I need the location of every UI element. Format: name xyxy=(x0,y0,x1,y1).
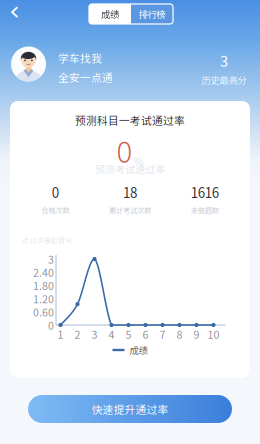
staticText: 累计考试次数 xyxy=(109,205,151,215)
staticText: 预测考试通过率 xyxy=(95,162,165,176)
staticText: 18 xyxy=(123,182,137,202)
button[interactable]: Back xyxy=(1,0,29,28)
staticText: 3 xyxy=(220,50,228,71)
staticText: 学车找我 xyxy=(58,50,102,65)
staticText: 1.80 xyxy=(33,278,54,293)
staticText: 成绩 xyxy=(101,7,119,21)
staticText: 未做题数 xyxy=(191,205,219,215)
staticText: 2.40 xyxy=(33,264,54,280)
staticText: 10 xyxy=(207,326,219,342)
staticText: 9 xyxy=(193,326,199,342)
staticText: 合格次数 xyxy=(41,205,69,215)
staticText: 2 xyxy=(74,326,80,342)
staticText: 3 xyxy=(91,326,97,342)
staticText: 预测科目一考试通过率 xyxy=(75,112,185,128)
staticText: 8 xyxy=(176,326,182,342)
button[interactable]: 快速提升通过率 xyxy=(28,395,232,423)
staticText: 0 xyxy=(52,182,59,202)
staticText: 全安一点通 xyxy=(58,69,113,85)
staticText: 4 xyxy=(108,326,114,342)
staticText: 0.60 xyxy=(33,304,54,319)
staticText: 0 xyxy=(116,129,132,171)
staticText: 3 xyxy=(48,251,54,267)
staticText: 0 xyxy=(48,317,54,333)
button[interactable]: 成绩 xyxy=(89,4,131,24)
staticText: 排行榜 xyxy=(138,7,165,21)
staticText: 1.20 xyxy=(33,291,54,306)
staticText: 6 xyxy=(142,326,148,342)
staticText: 快速提升通过率 xyxy=(91,401,168,417)
button[interactable]: 排行榜 xyxy=(131,4,173,24)
staticText: 1616 xyxy=(191,182,219,202)
staticText: 成绩 xyxy=(129,343,147,357)
staticText: 1 xyxy=(57,326,63,342)
staticText: 近10次模拟情况 xyxy=(22,235,72,245)
staticText: 7 xyxy=(159,326,165,342)
staticText: 历史最高分 xyxy=(201,73,246,86)
staticText: 5 xyxy=(125,326,131,342)
staticText: % xyxy=(133,153,143,168)
